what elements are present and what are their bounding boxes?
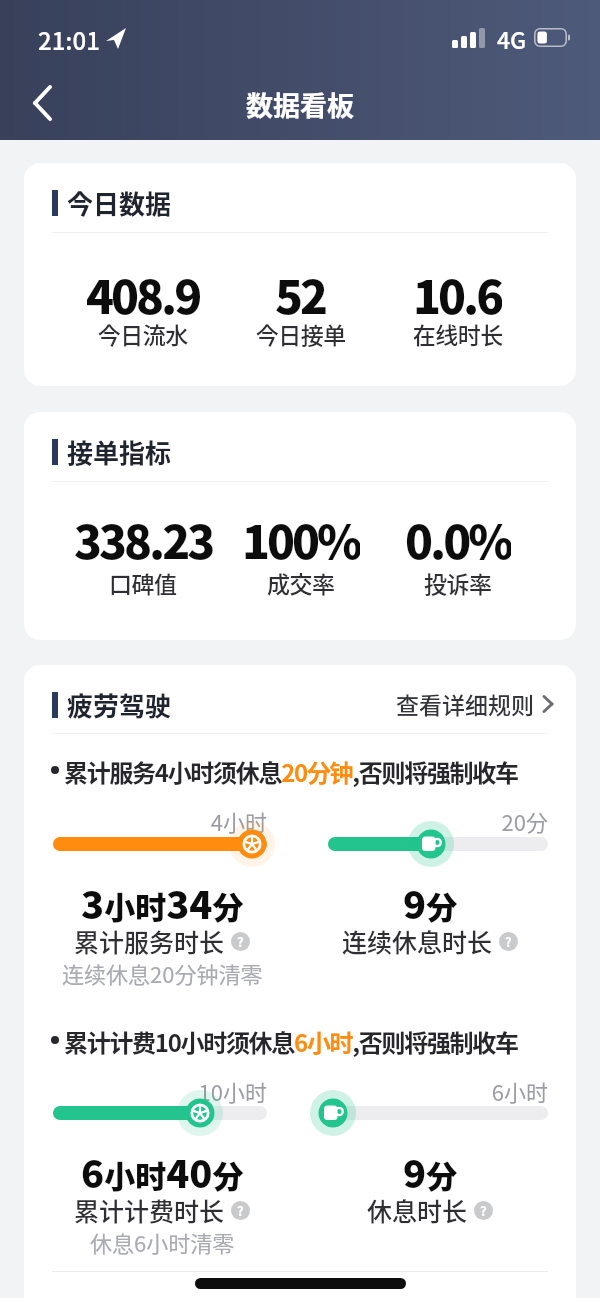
staticText: ? (505, 932, 512, 951)
staticText: 成交率 (267, 566, 335, 599)
staticText: 今日数据 (67, 184, 172, 222)
staticText: 6小时 (24, 1075, 548, 1107)
staticText: 9分 (403, 875, 458, 930)
staticText: 今日流水 (98, 317, 188, 350)
staticText: 在线时长 (413, 317, 503, 350)
staticText: 10.6 (413, 261, 502, 319)
staticText: 100% (242, 506, 360, 564)
staticText: 休息6小时清零 (90, 1226, 235, 1258)
staticText: 6小时40分 (81, 1144, 244, 1199)
staticText: 408.9 (86, 261, 200, 319)
staticText: 口碑值 (109, 566, 177, 599)
staticText: 今日接单 (256, 317, 346, 350)
staticText: ? (237, 932, 244, 951)
staticText: 休息时长 (367, 1192, 468, 1228)
staticText: 数据看板 (246, 85, 354, 124)
staticText: 21:01 (38, 22, 100, 57)
staticText: 0.0% (405, 506, 511, 564)
button[interactable]: ? (231, 932, 250, 951)
staticText: 4G (497, 22, 527, 55)
staticText: 累计计费10小时须休息6小时,否则将强制收车 (64, 1024, 518, 1059)
button[interactable]: ? (474, 1201, 493, 1220)
staticText: ? (480, 1201, 487, 1220)
staticText: 338.23 (74, 506, 213, 564)
staticText: 20分 (24, 805, 548, 837)
staticText: 3小时34分 (81, 875, 244, 930)
staticText: 52 (275, 261, 326, 319)
button[interactable]: ? (499, 932, 518, 951)
button[interactable]: 查看详细规则 (396, 687, 554, 720)
staticText: 疲劳驾驶 (67, 686, 172, 724)
staticText: 累计服务时长 (74, 923, 225, 959)
staticText: 查看详细规则 (396, 687, 534, 720)
button[interactable]: ? (231, 1201, 250, 1220)
staticText: 累计服务4小时须休息20分钟,否则将强制收车 (64, 754, 518, 789)
staticText: 连续休息时长 (342, 923, 493, 959)
staticText: 10小时 (24, 1075, 267, 1107)
staticText: 接单指标 (67, 433, 172, 471)
staticText: 4小时 (24, 805, 267, 837)
staticText: 9分 (403, 1144, 458, 1199)
button[interactable] (20, 80, 66, 126)
staticText: ? (237, 1201, 244, 1220)
staticText: 投诉率 (424, 566, 492, 599)
staticText: 累计计费时长 (74, 1192, 225, 1228)
staticText: 连续休息20分钟清零 (62, 957, 263, 989)
